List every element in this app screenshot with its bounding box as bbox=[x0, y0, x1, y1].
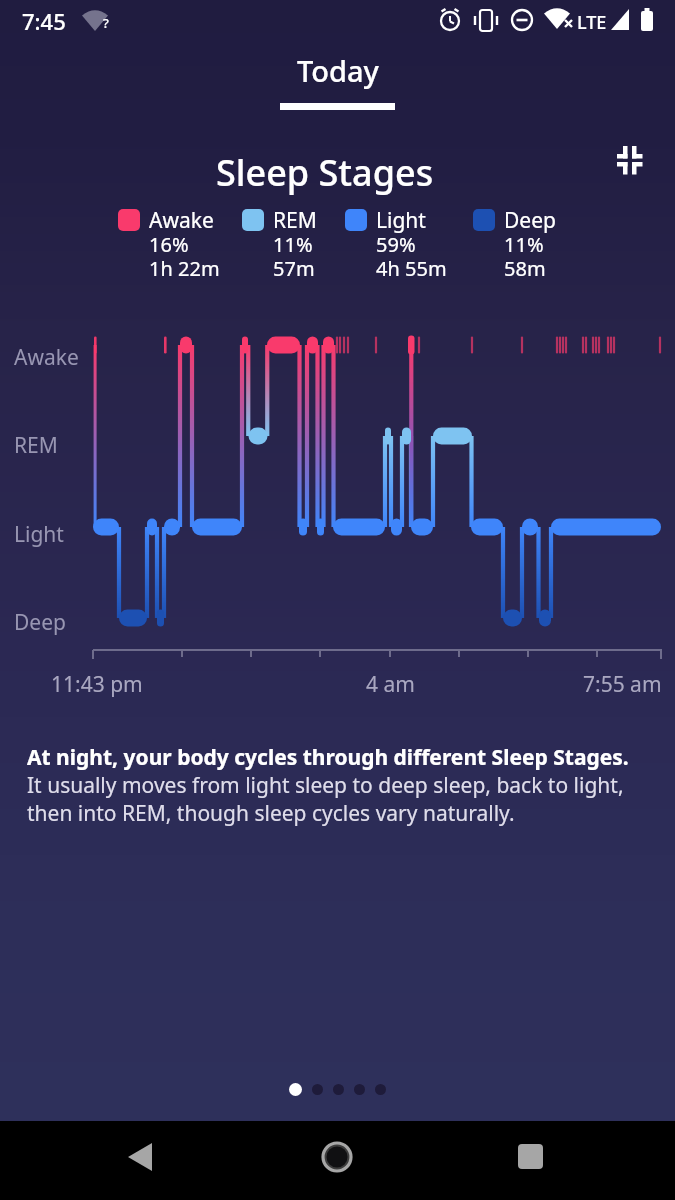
staticText: Deep bbox=[14, 608, 66, 637]
button[interactable] bbox=[615, 144, 645, 174]
staticText: At night, your body cycles through diffe… bbox=[27, 743, 629, 772]
staticText: 7:45 bbox=[22, 6, 66, 36]
staticText: REM bbox=[273, 206, 317, 235]
button[interactable] bbox=[312, 1084, 323, 1095]
staticText: It usually moves from light sleep to dee… bbox=[27, 771, 624, 800]
staticText: 59% bbox=[376, 231, 416, 258]
staticText: Light bbox=[376, 206, 426, 235]
staticText: Sleep Stages bbox=[216, 148, 434, 197]
staticText: Light bbox=[14, 520, 64, 549]
button[interactable] bbox=[320, 1140, 354, 1174]
staticText: 1h 22m bbox=[149, 255, 220, 282]
button[interactable]: Today bbox=[280, 51, 395, 110]
staticText: LTE bbox=[577, 10, 607, 35]
staticText: then into REM, though sleep cycles vary … bbox=[27, 799, 515, 828]
button[interactable] bbox=[289, 1083, 302, 1096]
staticText: 4h 55m bbox=[376, 255, 447, 282]
staticText: 11% bbox=[273, 231, 313, 258]
staticText: ? bbox=[103, 14, 109, 32]
button[interactable] bbox=[354, 1084, 365, 1095]
staticText: Awake bbox=[14, 343, 79, 372]
staticText: REM bbox=[14, 431, 58, 460]
staticText: 11% bbox=[504, 231, 544, 258]
staticText: Today bbox=[297, 51, 379, 90]
button[interactable] bbox=[127, 1143, 155, 1171]
staticText: Deep bbox=[504, 206, 556, 235]
button[interactable] bbox=[375, 1084, 386, 1095]
staticText: 4 am bbox=[366, 670, 415, 699]
button[interactable] bbox=[333, 1084, 344, 1095]
staticText: 58m bbox=[504, 255, 546, 282]
staticText: Awake bbox=[149, 206, 214, 235]
staticText: 11:43 pm bbox=[51, 670, 143, 699]
button[interactable] bbox=[518, 1144, 543, 1169]
staticText: 57m bbox=[273, 255, 315, 282]
staticText: 7:55 am bbox=[583, 670, 662, 699]
staticText: 16% bbox=[149, 231, 189, 258]
